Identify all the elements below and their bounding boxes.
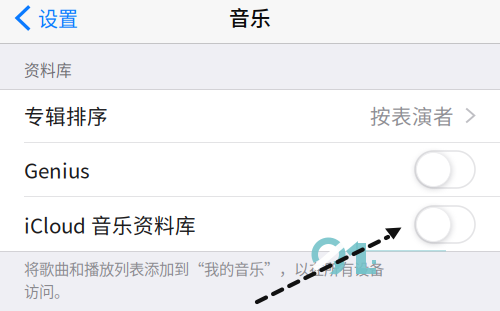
button[interactable]: Genius xyxy=(415,151,475,188)
button[interactable]: 专辑排序 xyxy=(0,89,500,142)
staticText: 按表演者 xyxy=(370,101,454,130)
staticText: 资料库 xyxy=(24,58,72,81)
staticText: iCloud 音乐资料库 xyxy=(24,210,196,239)
staticText: 将歌曲和播放列表添加到“我的音乐”，以在所有设备访问。 xyxy=(24,257,384,301)
button[interactable]: iCloud 音乐资料库 xyxy=(415,206,475,243)
staticText: 设置 xyxy=(38,3,78,32)
staticText: 专辑排序 xyxy=(24,101,108,130)
staticText: Genius xyxy=(24,155,90,184)
staticText: 音乐 xyxy=(229,2,271,32)
button[interactable]: 设置 xyxy=(0,0,90,44)
